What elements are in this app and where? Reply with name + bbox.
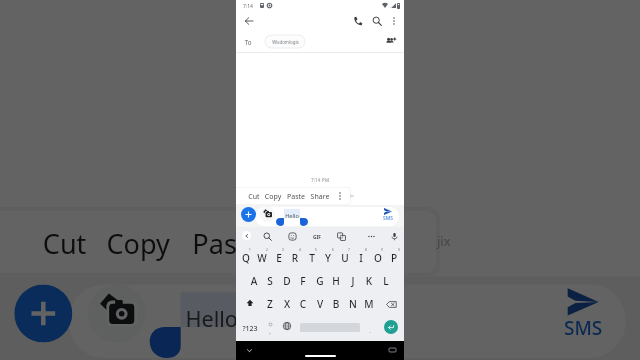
staticText: Cut (244, 192, 264, 202)
staticText: Wisdomlogix (272, 39, 299, 45)
button[interactable]: V (312, 297, 328, 311)
staticText: Q (238, 251, 254, 265)
staticText: B (328, 297, 344, 311)
staticText: L (378, 274, 394, 288)
button[interactable]: More (365, 230, 378, 243)
staticText: X (279, 297, 295, 311)
button[interactable]: , (265, 328, 275, 336)
button[interactable]: M (361, 297, 377, 311)
button[interactable]: Copy (262, 192, 284, 202)
staticText: R (287, 251, 303, 265)
button[interactable]: N (345, 297, 361, 311)
staticText: Cut (26, 226, 103, 265)
button[interactable]: Paste (284, 192, 308, 202)
staticText: jix (424, 230, 463, 250)
button[interactable]: U (337, 251, 353, 265)
button[interactable] (255, 207, 399, 226)
button[interactable]: Paste (181, 226, 274, 265)
button[interactable] (92, 284, 142, 335)
button[interactable]: Search (370, 14, 384, 28)
button[interactable]: D (279, 274, 295, 288)
staticText: Share (308, 192, 332, 202)
button[interactable]: Z (262, 297, 278, 311)
button[interactable]: Y (320, 251, 336, 265)
button[interactable]: Share (308, 192, 332, 202)
button[interactable]: Switch keyboard (387, 345, 397, 355)
button[interactable]: Change language (281, 320, 293, 332)
button[interactable]: Cut (26, 226, 103, 265)
staticText: F (295, 274, 311, 288)
button[interactable]: Voice input (388, 230, 401, 243)
staticText: G (312, 274, 328, 288)
button[interactable]: W (254, 251, 270, 265)
button[interactable]: H (328, 274, 344, 288)
button[interactable]: More options (387, 14, 401, 28)
button[interactable]: F (295, 274, 311, 288)
button[interactable]: P (386, 251, 402, 265)
button[interactable]: B (328, 297, 344, 311)
staticText: . (365, 327, 375, 334)
button[interactable]: Search (261, 230, 274, 243)
staticText: 7:14 PM (290, 177, 350, 184)
button[interactable]: Backspace (384, 297, 398, 311)
button[interactable]: Back (242, 14, 256, 28)
button[interactable]: Copy (95, 226, 181, 265)
button[interactable]: Stickers (286, 230, 299, 243)
button[interactable]: GIF (309, 234, 325, 241)
staticText: 8 (361, 248, 371, 252)
staticText: 7:14 PM (204, 168, 436, 195)
button[interactable] (267, 321, 273, 327)
button[interactable]: Camera (88, 284, 146, 342)
button[interactable]: Cut (244, 192, 264, 202)
staticText: 3 (278, 248, 288, 252)
button[interactable]: O (370, 251, 386, 265)
button[interactable]: I (353, 251, 369, 265)
staticText: Share (274, 226, 366, 265)
button[interactable]: Enter (384, 320, 398, 334)
button[interactable]: Add attachment (14, 284, 72, 342)
button[interactable]: L (378, 274, 394, 288)
button[interactable]: More (370, 215, 424, 269)
button[interactable]: Hide keyboard (244, 345, 254, 355)
button[interactable]: Wisdomlogix (265, 35, 305, 48)
button[interactable]: Share (274, 226, 366, 265)
staticText: 1 (245, 248, 255, 252)
button[interactable] (68, 284, 626, 358)
staticText: S (262, 274, 278, 288)
staticText: T (304, 251, 320, 265)
button[interactable]: Q (238, 251, 254, 265)
button[interactable]: R (287, 251, 303, 265)
staticText: To (238, 38, 258, 46)
button[interactable]: Back (242, 231, 251, 240)
button[interactable]: Send SMS (379, 207, 399, 225)
staticText: SMS (378, 215, 398, 222)
button[interactable]: Send SMS (548, 284, 626, 354)
staticText: O (370, 251, 386, 265)
staticText: Hello (161, 304, 262, 335)
staticText: Paste (181, 226, 274, 265)
button[interactable]: Call (351, 14, 365, 28)
button[interactable]: More (333, 189, 347, 203)
button[interactable]: T (304, 251, 320, 265)
button[interactable]: Camera (260, 207, 275, 222)
staticText: 7:14 (238, 3, 258, 10)
button[interactable]: ?123 (236, 324, 264, 334)
button[interactable] (261, 207, 274, 220)
button[interactable]: A (246, 274, 262, 288)
button[interactable]: Translate (335, 230, 348, 243)
button[interactable]: X (279, 297, 295, 311)
staticText: 6 (328, 248, 338, 252)
button[interactable]: E (271, 251, 287, 265)
button[interactable]: G (312, 274, 328, 288)
staticText: ?123 (236, 324, 264, 334)
button[interactable]: Shift (244, 297, 256, 309)
staticText: I (353, 251, 369, 265)
button[interactable]: S (262, 274, 278, 288)
button[interactable]: Add people (384, 34, 398, 48)
button[interactable]: C (295, 297, 311, 311)
button[interactable]: Add attachment (241, 207, 256, 222)
button[interactable]: K (361, 274, 377, 288)
button[interactable]: . (365, 327, 375, 334)
button[interactable]: J (345, 274, 361, 288)
